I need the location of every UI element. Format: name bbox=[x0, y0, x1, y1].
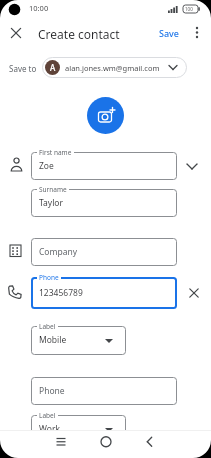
staticText: Save bbox=[159, 27, 180, 39]
staticText: Label bbox=[39, 322, 56, 331]
button[interactable] bbox=[31, 377, 177, 405]
staticText: 100 bbox=[185, 6, 193, 12]
staticText: Mobile bbox=[39, 334, 67, 346]
button[interactable] bbox=[31, 189, 177, 217]
staticText: Label bbox=[39, 411, 56, 420]
staticText: Zoe bbox=[39, 160, 54, 172]
staticText: Create contact bbox=[38, 26, 120, 42]
staticText: 123456789 bbox=[39, 287, 83, 299]
button[interactable] bbox=[31, 326, 126, 355]
button[interactable] bbox=[31, 415, 126, 444]
staticText: Company bbox=[39, 246, 78, 258]
staticText: Taylor bbox=[39, 197, 63, 209]
staticText: Save to bbox=[9, 63, 37, 74]
button[interactable] bbox=[186, 285, 202, 301]
button[interactable] bbox=[139, 431, 161, 453]
button[interactable]: A bbox=[42, 57, 187, 78]
staticText: Phone bbox=[39, 385, 65, 397]
staticText: First name bbox=[39, 148, 72, 157]
button[interactable] bbox=[188, 23, 206, 43]
button[interactable] bbox=[95, 431, 117, 453]
button[interactable] bbox=[87, 97, 124, 134]
staticText: Work bbox=[39, 423, 60, 435]
staticText: Phone bbox=[39, 273, 59, 282]
button[interactable] bbox=[31, 238, 177, 266]
staticText: Surname bbox=[39, 185, 67, 194]
button[interactable] bbox=[6, 23, 26, 43]
staticText: alan.jones.wm@gmail.com bbox=[65, 63, 160, 73]
staticText: A bbox=[50, 62, 56, 73]
staticText: 10:00 bbox=[29, 3, 49, 13]
button[interactable] bbox=[31, 152, 177, 180]
button[interactable]: Save bbox=[152, 23, 186, 43]
button[interactable] bbox=[50, 431, 72, 453]
button[interactable] bbox=[31, 277, 177, 309]
